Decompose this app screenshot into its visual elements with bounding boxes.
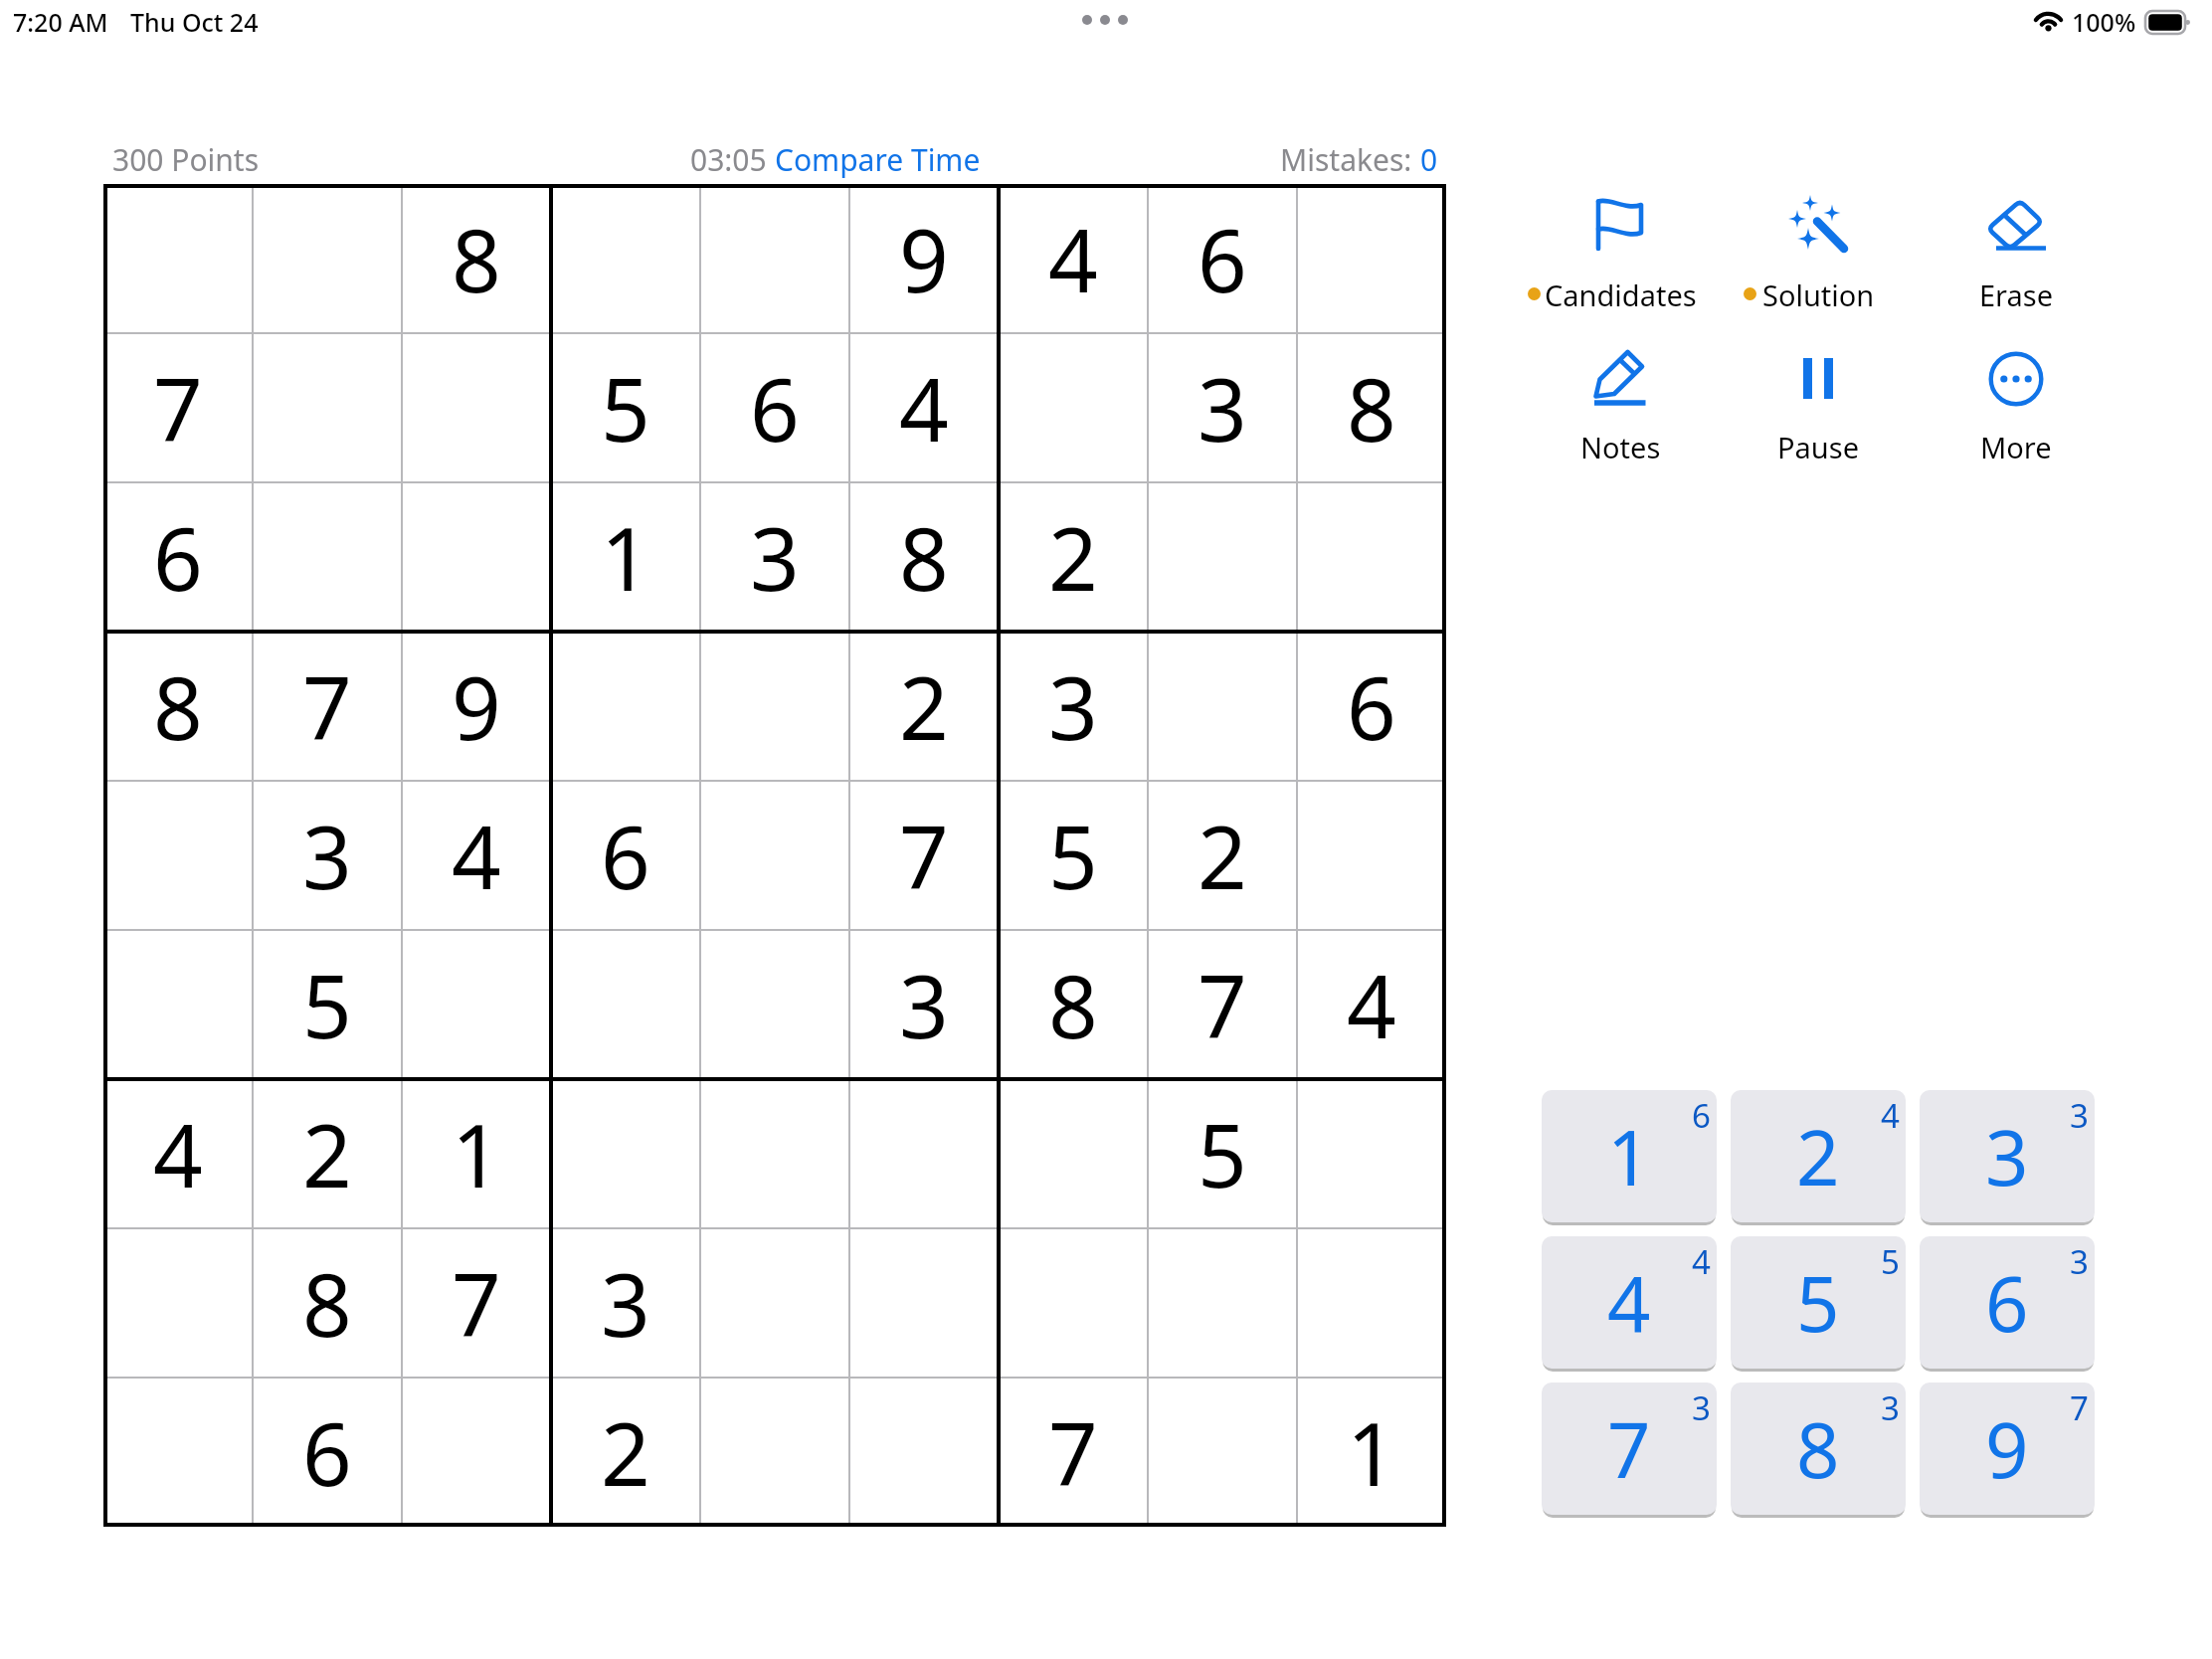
button[interactable]: Empty cell — [103, 184, 253, 333]
staticText: 8 — [452, 200, 501, 317]
button[interactable]: Empty cell — [700, 1228, 849, 1378]
button[interactable]: 2 — [849, 632, 999, 781]
button[interactable]: Empty cell — [700, 930, 849, 1079]
button[interactable]: Empty cell — [849, 1079, 999, 1228]
button[interactable]: Empty cell — [849, 1228, 999, 1378]
button[interactable]: Empty cell — [700, 632, 849, 781]
button[interactable]: Empty cell — [849, 1378, 999, 1527]
button[interactable]: 1 — [1542, 1090, 1717, 1222]
button[interactable]: 6 — [1148, 184, 1297, 333]
button[interactable]: 5 — [1731, 1236, 1906, 1369]
button[interactable]: 1 — [402, 1079, 551, 1228]
button[interactable]: 2 — [551, 1378, 700, 1527]
staticText: 3 — [750, 498, 800, 616]
button[interactable]: Empty cell — [551, 1079, 700, 1228]
button[interactable]: Empty cell — [402, 482, 551, 632]
button[interactable]: 8 — [999, 930, 1148, 1079]
button[interactable]: 4 — [849, 333, 999, 482]
button[interactable]: Empty cell — [402, 333, 551, 482]
button[interactable]: Empty cell — [700, 781, 849, 930]
button[interactable]: 7 — [1542, 1382, 1717, 1515]
button[interactable]: Empty cell — [103, 781, 253, 930]
button[interactable]: 4 — [1297, 930, 1446, 1079]
button[interactable]: 3 — [551, 1228, 700, 1378]
button[interactable]: Empty cell — [1148, 1378, 1297, 1527]
button[interactable]: Empty cell — [402, 930, 551, 1079]
button[interactable]: 3 — [1148, 333, 1297, 482]
button[interactable]: Empty cell — [551, 184, 700, 333]
button[interactable]: 8 — [253, 1228, 402, 1378]
button[interactable]: 7 — [402, 1228, 551, 1378]
staticText: 4 — [1607, 1251, 1651, 1355]
button[interactable]: Empty cell — [402, 1378, 551, 1527]
button[interactable]: 6 — [1297, 632, 1446, 781]
button[interactable]: Empty cell — [700, 184, 849, 333]
button[interactable]: More — [1918, 332, 2115, 457]
button[interactable]: 9 — [849, 184, 999, 333]
button[interactable]: 2 — [253, 1079, 402, 1228]
button[interactable]: Empty cell — [700, 1079, 849, 1228]
button[interactable]: Empty cell — [1297, 1079, 1446, 1228]
button[interactable]: Empty cell — [1148, 482, 1297, 632]
button[interactable]: Empty cell — [1148, 632, 1297, 781]
button[interactable]: Empty cell — [103, 1378, 253, 1527]
button[interactable]: Pause — [1720, 332, 1917, 457]
button[interactable]: 1 — [1297, 1378, 1446, 1527]
button[interactable]: Empty cell — [253, 482, 402, 632]
button[interactable]: Empty cell — [700, 1378, 849, 1527]
button[interactable]: 5 — [253, 930, 402, 1079]
button[interactable]: 8 — [402, 184, 551, 333]
button[interactable]: Empty cell — [253, 184, 402, 333]
button[interactable]: Compare Time — [775, 139, 981, 180]
button[interactable]: Solution — [1720, 181, 1917, 305]
button[interactable]: Empty cell — [1297, 1228, 1446, 1378]
button[interactable]: Empty cell — [1297, 184, 1446, 333]
button[interactable]: 4 — [1542, 1236, 1717, 1369]
button[interactable]: 1 — [551, 482, 700, 632]
button[interactable]: 6 — [551, 781, 700, 930]
button[interactable]: 6 — [1920, 1236, 2095, 1369]
button[interactable]: 6 — [103, 482, 253, 632]
button[interactable]: Notes — [1522, 332, 1719, 457]
button[interactable]: Empty cell — [103, 930, 253, 1079]
button[interactable]: 8 — [849, 482, 999, 632]
button[interactable]: 6 — [700, 333, 849, 482]
button[interactable]: 8 — [1297, 333, 1446, 482]
button[interactable]: 4 — [999, 184, 1148, 333]
button[interactable]: 7 — [849, 781, 999, 930]
button[interactable]: 2 — [999, 482, 1148, 632]
button[interactable]: Empty cell — [551, 632, 700, 781]
button[interactable]: Empty cell — [103, 1228, 253, 1378]
button[interactable]: 7 — [253, 632, 402, 781]
button[interactable]: 9 — [1920, 1382, 2095, 1515]
button[interactable]: Empty cell — [253, 333, 402, 482]
button[interactable]: 8 — [103, 632, 253, 781]
button[interactable]: 5 — [551, 333, 700, 482]
button[interactable]: 8 — [1731, 1382, 1906, 1515]
button[interactable]: 3 — [1920, 1090, 2095, 1222]
button[interactable]: Empty cell — [1148, 1228, 1297, 1378]
button[interactable]: Candidates — [1522, 181, 1719, 305]
button[interactable]: 4 — [103, 1079, 253, 1228]
button[interactable]: Empty cell — [999, 333, 1148, 482]
button[interactable]: 9 — [402, 632, 551, 781]
button[interactable]: 7 — [1148, 930, 1297, 1079]
button[interactable]: 7 — [103, 333, 253, 482]
button[interactable]: 2 — [1148, 781, 1297, 930]
button[interactable]: 7 — [999, 1378, 1148, 1527]
button[interactable]: 4 — [402, 781, 551, 930]
button[interactable]: 3 — [253, 781, 402, 930]
button[interactable]: Empty cell — [551, 930, 700, 1079]
button[interactable]: 3 — [700, 482, 849, 632]
button[interactable]: Empty cell — [1297, 781, 1446, 930]
button[interactable]: 6 — [253, 1378, 402, 1527]
button[interactable]: 2 — [1731, 1090, 1906, 1222]
button[interactable]: Empty cell — [999, 1228, 1148, 1378]
button[interactable]: 3 — [849, 930, 999, 1079]
button[interactable]: 3 — [999, 632, 1148, 781]
button[interactable]: Erase — [1918, 181, 2115, 305]
button[interactable]: 5 — [1148, 1079, 1297, 1228]
button[interactable]: Empty cell — [999, 1079, 1148, 1228]
button[interactable]: 5 — [999, 781, 1148, 930]
button[interactable]: Empty cell — [1297, 482, 1446, 632]
